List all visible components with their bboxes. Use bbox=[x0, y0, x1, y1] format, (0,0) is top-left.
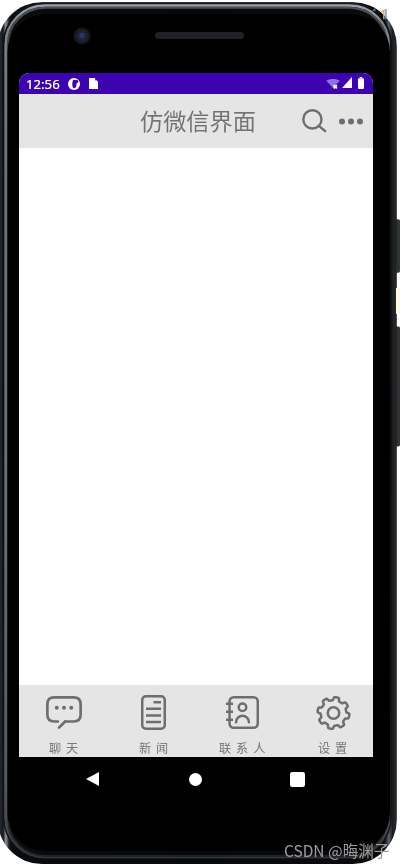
button[interactable]: Home bbox=[173, 761, 218, 797]
button[interactable]: Search bbox=[290, 97, 338, 145]
button[interactable]: Back bbox=[70, 761, 115, 797]
button[interactable]: Recent apps bbox=[275, 761, 320, 797]
staticText: 设置 bbox=[318, 739, 353, 757]
staticText: 仿微信界面 bbox=[140, 103, 256, 137]
staticText: 聊天 bbox=[49, 739, 84, 757]
staticText: CSDN @晦渊子 bbox=[284, 839, 390, 861]
staticText: 联系人 bbox=[219, 739, 271, 757]
button[interactable] bbox=[196, 685, 285, 757]
button[interactable] bbox=[285, 685, 373, 757]
button[interactable]: More options bbox=[331, 97, 369, 145]
staticText: 新闻 bbox=[139, 739, 174, 757]
button[interactable] bbox=[19, 685, 108, 757]
staticText: 12:56 bbox=[26, 75, 60, 93]
button[interactable] bbox=[108, 685, 197, 757]
